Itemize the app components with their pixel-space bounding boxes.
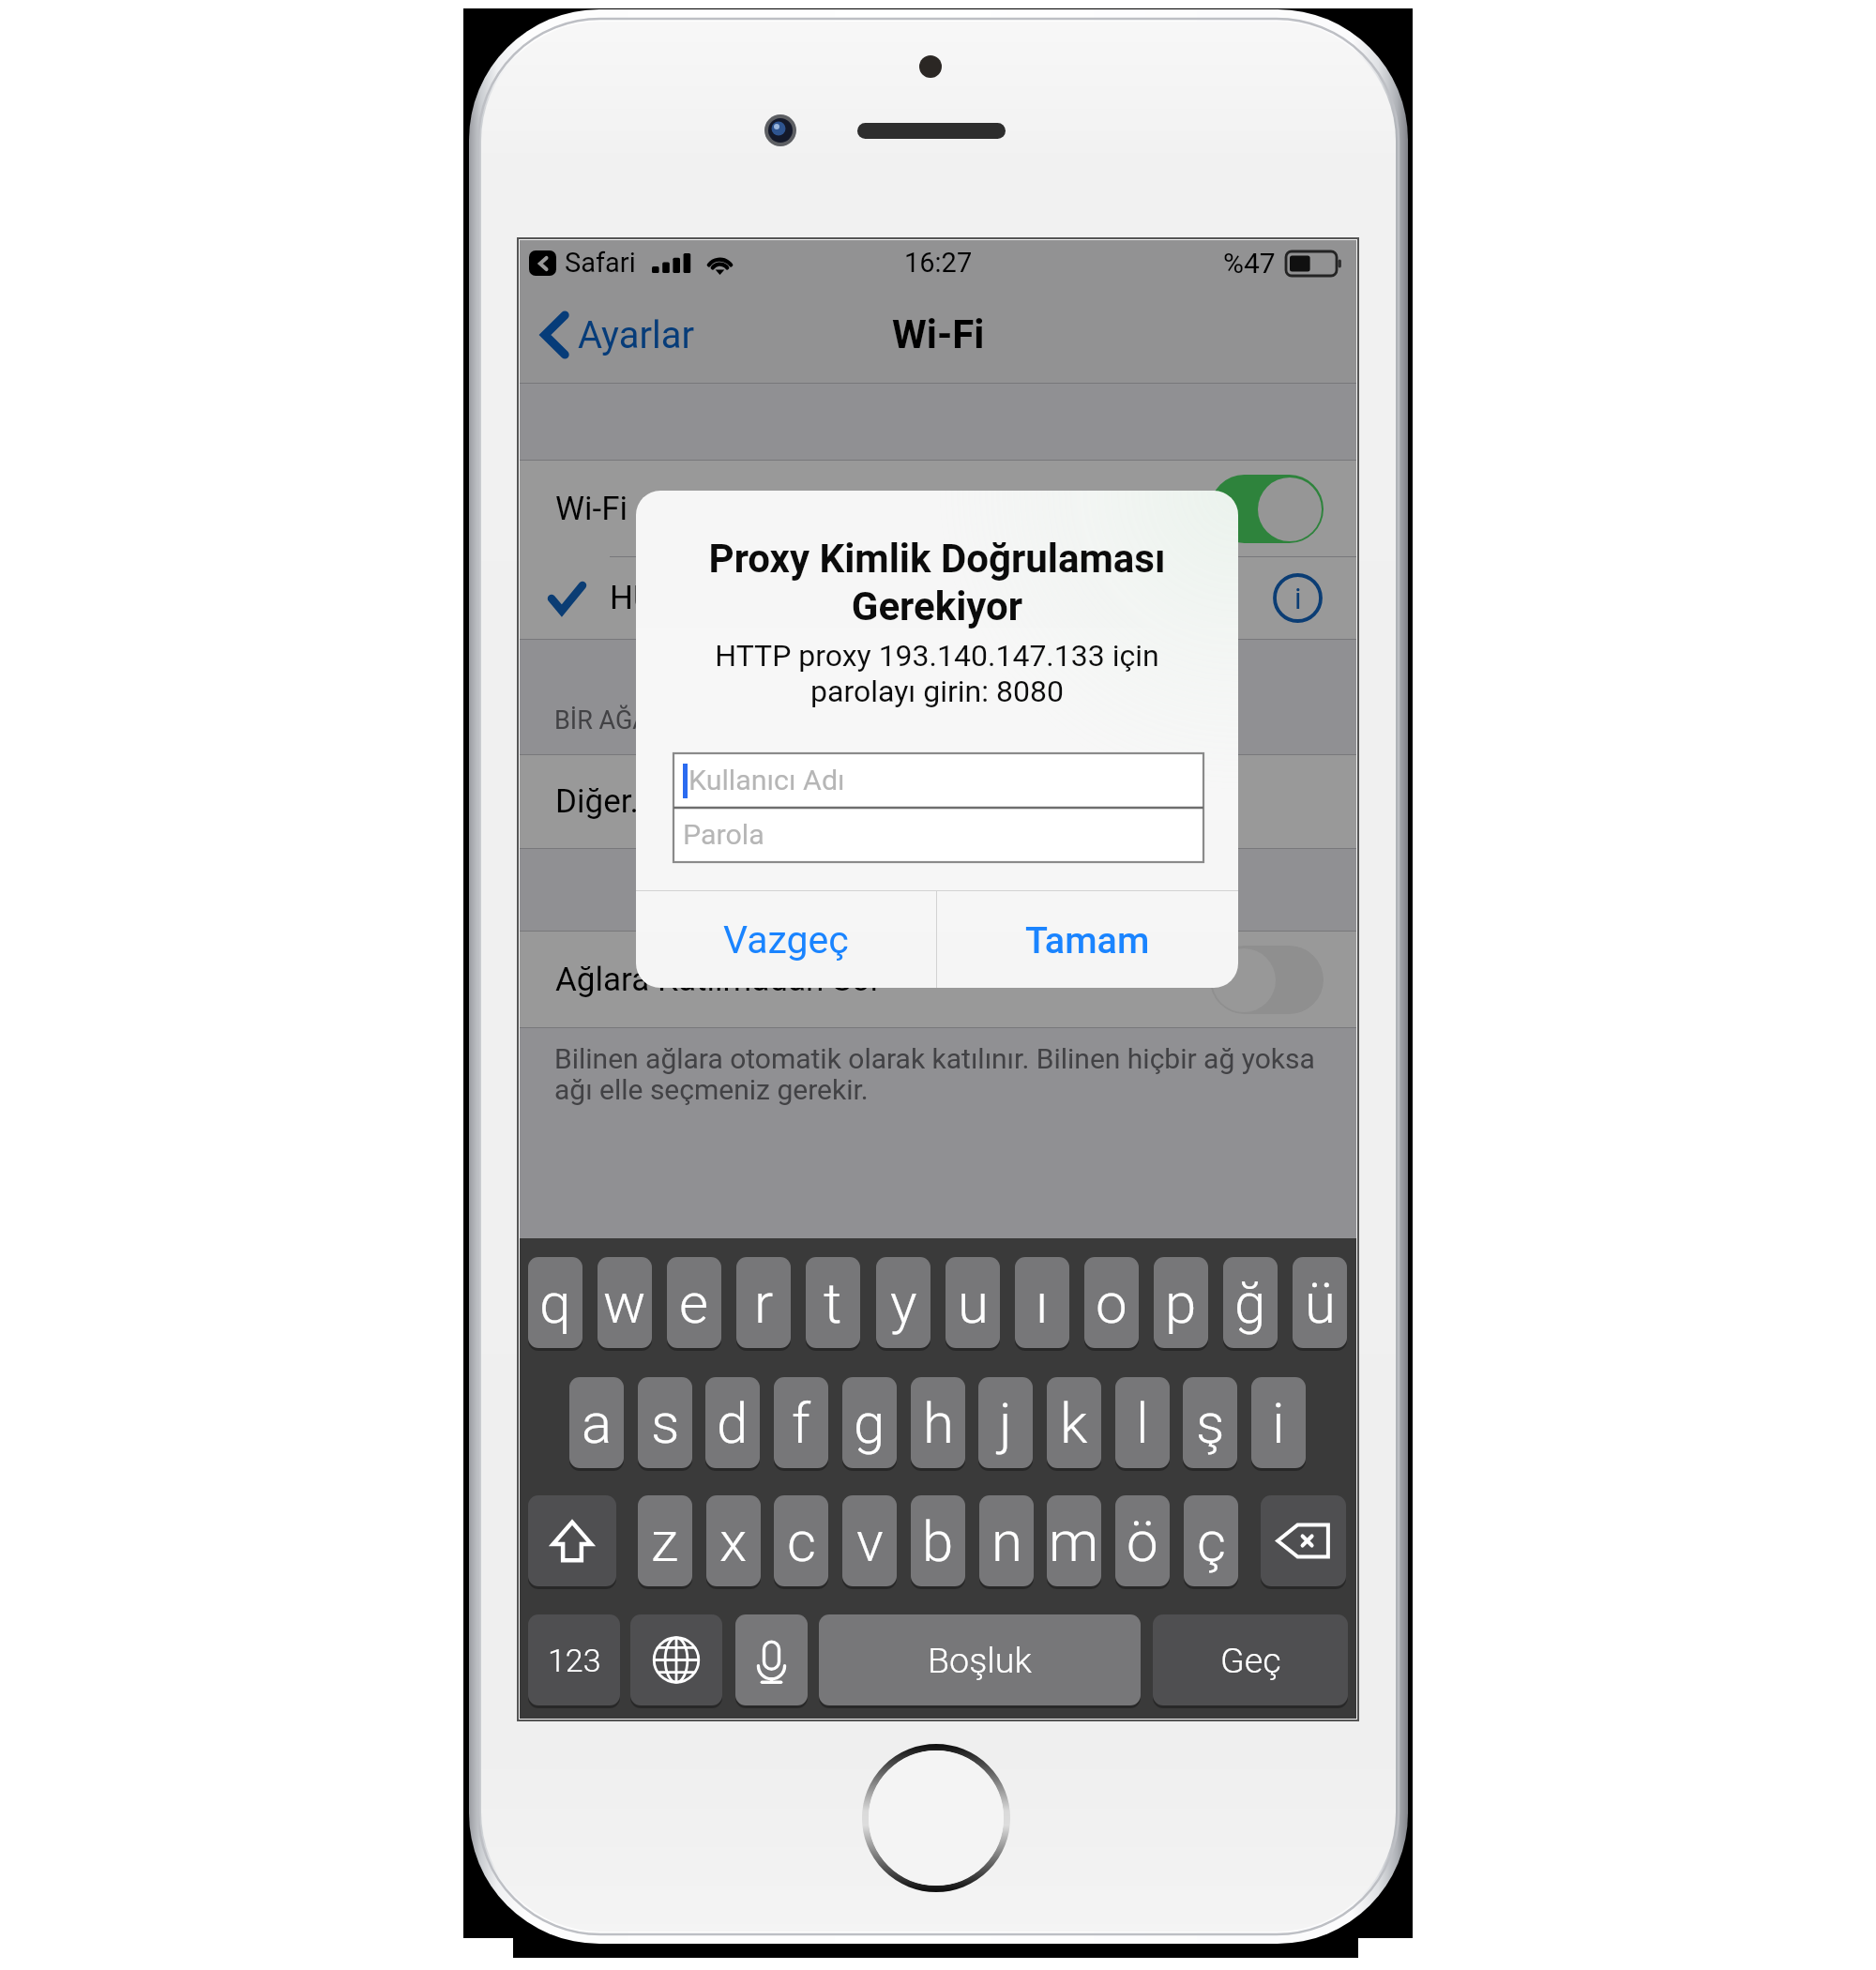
staticText: ı	[1036, 1270, 1049, 1336]
button[interactable]: Boşluk	[819, 1614, 1141, 1705]
staticText: y	[890, 1270, 917, 1336]
staticText: Tamam	[1025, 918, 1150, 962]
button[interactable]: ı	[1015, 1257, 1069, 1348]
button[interactable]: f	[774, 1377, 828, 1468]
staticText: f	[792, 1390, 810, 1456]
staticText: Ayarlar	[578, 313, 695, 357]
staticText: z	[651, 1508, 679, 1574]
button[interactable]: d	[705, 1377, 760, 1468]
button[interactable]: Diğer…	[520, 755, 1356, 848]
button[interactable]: l	[1115, 1377, 1170, 1468]
button[interactable]: Ayarlar	[520, 311, 706, 358]
staticText: Parola	[683, 818, 764, 852]
button[interactable]: s	[638, 1377, 692, 1468]
staticText: HÜ	[610, 579, 655, 617]
staticText: 123	[548, 1642, 601, 1679]
staticText: h	[923, 1390, 954, 1456]
button[interactable]: w	[598, 1257, 652, 1348]
button[interactable]: u	[946, 1257, 1000, 1348]
button[interactable]: p	[1154, 1257, 1208, 1348]
button[interactable]: ğ	[1223, 1257, 1278, 1348]
button[interactable]: q	[528, 1257, 582, 1348]
button[interactable]: ö	[1115, 1495, 1170, 1586]
staticText: Ağlara Katılmadan Sor	[555, 961, 882, 999]
button[interactable]: y	[876, 1257, 930, 1348]
staticText: c	[787, 1508, 816, 1574]
button[interactable]: ü	[1293, 1257, 1347, 1348]
button[interactable]: x	[706, 1495, 761, 1586]
button[interactable]: Backspace	[1261, 1495, 1346, 1586]
staticText: ğ	[1234, 1270, 1266, 1336]
staticText: HTTP proxy 193.140.147.133 için parolayı…	[651, 638, 1223, 709]
staticText: ş	[1196, 1390, 1225, 1456]
button[interactable]: Shift	[528, 1495, 616, 1586]
staticText: Safari	[565, 247, 636, 279]
staticText: ç	[1197, 1508, 1226, 1574]
button[interactable]: a	[569, 1377, 624, 1468]
staticText: u	[958, 1270, 989, 1336]
button[interactable]: ş	[1183, 1377, 1237, 1468]
staticText: Wi-Fi	[892, 311, 985, 357]
staticText: o	[1096, 1270, 1127, 1336]
button[interactable]: Back to Safari	[529, 250, 556, 276]
staticText: l	[1136, 1390, 1149, 1456]
staticText: Vazgeç	[723, 917, 849, 962]
staticText: i	[1294, 582, 1302, 615]
button[interactable]: t	[806, 1257, 860, 1348]
button[interactable]: Tamam	[937, 891, 1238, 988]
staticText: Proxy Kimlik Doğrulaması Gerekiyor	[651, 536, 1223, 629]
staticText: i	[1272, 1390, 1285, 1456]
button[interactable]: Network details	[1273, 573, 1323, 623]
button[interactable]: j	[978, 1377, 1033, 1468]
staticText: ü	[1305, 1270, 1336, 1336]
button[interactable]: ç	[1184, 1495, 1238, 1586]
staticText: Kullanıcı Adı	[688, 764, 845, 797]
staticText: Geç	[1220, 1640, 1281, 1681]
button[interactable]: Ask to join networks off	[1210, 946, 1324, 1014]
button[interactable]: m	[1047, 1495, 1101, 1586]
staticText: Bilinen ağlara otomatik olarak katılınır…	[554, 1042, 1332, 1106]
staticText: s	[651, 1390, 680, 1456]
button[interactable]: z	[638, 1495, 692, 1586]
staticText: g	[854, 1390, 885, 1456]
button[interactable]: h	[911, 1377, 965, 1468]
staticText: t	[824, 1270, 842, 1336]
button[interactable]: 123	[528, 1614, 620, 1705]
staticText: a	[582, 1390, 613, 1456]
staticText: %47	[1223, 247, 1276, 280]
button[interactable]: n	[979, 1495, 1034, 1586]
button[interactable]: c	[774, 1495, 828, 1586]
staticText: Diğer…	[555, 782, 652, 821]
button[interactable]: v	[842, 1495, 897, 1586]
staticText: n	[991, 1508, 1022, 1574]
staticText: p	[1165, 1270, 1197, 1336]
button[interactable]: Wi-Fi	[520, 461, 1356, 557]
staticText: BİR AĞA BAĞLAN	[554, 705, 754, 735]
staticText: 16:27	[904, 247, 973, 279]
button[interactable]: Parola	[673, 808, 1203, 862]
staticText: ö	[1127, 1508, 1158, 1574]
staticText: v	[856, 1508, 884, 1574]
staticText: j	[999, 1390, 1012, 1456]
staticText: Wi-Fi	[555, 490, 628, 528]
button[interactable]: r	[736, 1257, 791, 1348]
staticText: b	[922, 1508, 954, 1574]
button[interactable]: Ağlara Katılmadan Sor	[520, 932, 1356, 1027]
staticText: r	[754, 1270, 774, 1336]
button[interactable]: Kullanıcı Adı	[673, 753, 1203, 808]
button[interactable]: HÜ	[520, 557, 1356, 639]
button[interactable]: i	[1251, 1377, 1306, 1468]
button[interactable]: e	[667, 1257, 721, 1348]
button[interactable]: Vazgeç	[636, 891, 936, 988]
button[interactable]: g	[842, 1377, 897, 1468]
staticText: m	[1049, 1508, 1099, 1574]
button[interactable]: b	[911, 1495, 965, 1586]
button[interactable]: Dictation	[735, 1614, 808, 1705]
button[interactable]: Geç	[1153, 1614, 1348, 1705]
button[interactable]: k	[1047, 1377, 1101, 1468]
staticText: k	[1060, 1390, 1088, 1456]
button[interactable]: Next keyboard	[630, 1614, 722, 1705]
button[interactable]: Wi-Fi on	[1210, 475, 1324, 543]
staticText: x	[719, 1508, 748, 1574]
button[interactable]: o	[1084, 1257, 1139, 1348]
